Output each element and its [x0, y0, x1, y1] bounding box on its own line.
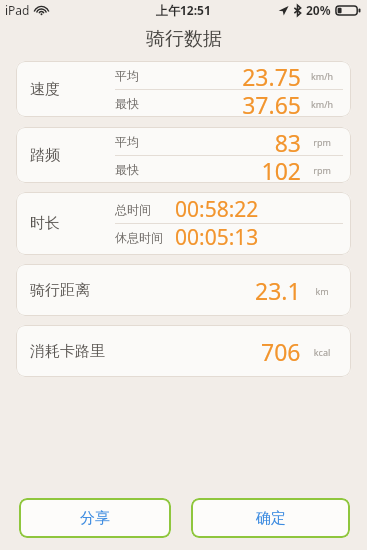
button[interactable]: 时长	[16, 192, 351, 255]
button[interactable]: 速度	[16, 61, 351, 117]
button[interactable]: 消耗卡路里	[16, 325, 351, 377]
staticText: 706	[261, 336, 301, 367]
staticText: km	[301, 285, 343, 297]
staticText: 00:58:22	[175, 195, 343, 222]
other: Wi-Fi	[35, 5, 48, 15]
staticText: 最快	[115, 96, 155, 111]
staticText: 消耗卡路里	[30, 342, 105, 361]
staticText: 20%	[306, 2, 331, 18]
staticText: 23.75	[155, 61, 301, 88]
staticText: 23.1	[255, 275, 301, 306]
staticText: 确定	[256, 509, 286, 528]
staticText: 踏频	[30, 146, 60, 165]
staticText: 00:05:13	[175, 223, 343, 250]
staticText: 102	[155, 155, 301, 182]
staticText: iPad	[5, 2, 30, 18]
other: Battery 20 percent	[335, 5, 361, 16]
staticText: 休息时间	[115, 230, 175, 245]
staticText: 分享	[80, 509, 110, 528]
staticText: rpm	[301, 136, 343, 148]
staticText: 37.65	[155, 89, 301, 116]
staticText: 平均	[115, 134, 155, 149]
button[interactable]: 骑行距离	[16, 264, 351, 316]
staticText: km/h	[301, 98, 343, 110]
button[interactable]: 确定	[191, 498, 350, 538]
staticText: 骑行距离	[30, 281, 90, 300]
button[interactable]: 分享	[19, 498, 171, 538]
staticText: 总时间	[115, 202, 175, 217]
staticText: km/h	[301, 70, 343, 82]
staticText: 时长	[30, 214, 60, 233]
staticText: rpm	[301, 164, 343, 176]
staticText: 83	[155, 127, 301, 154]
other: Bluetooth	[294, 5, 301, 16]
staticText: 上午12:51	[156, 2, 211, 18]
staticText: 平均	[115, 68, 155, 83]
staticText: kcal	[301, 346, 343, 358]
button[interactable]: 踏频	[16, 127, 351, 183]
staticText: 骑行数据	[146, 27, 222, 51]
other: Location	[278, 5, 289, 16]
staticText: 最快	[115, 162, 155, 177]
staticText: 速度	[30, 80, 60, 99]
